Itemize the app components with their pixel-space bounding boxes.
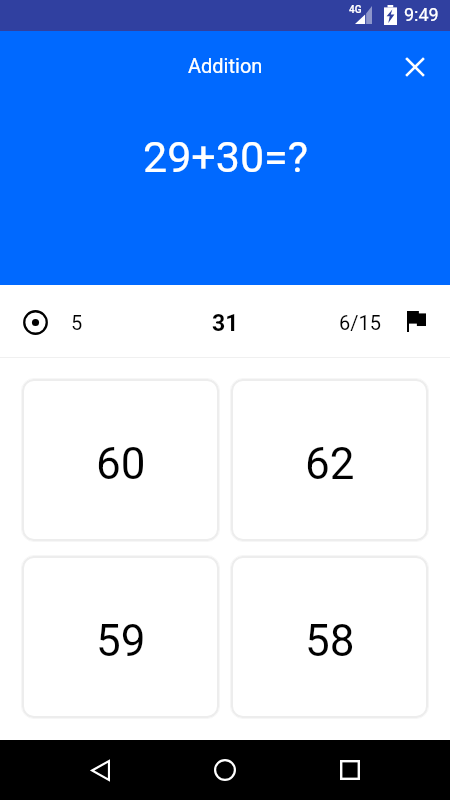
staticText: 9:49: [404, 4, 439, 25]
button[interactable]: Home: [201, 746, 249, 794]
button[interactable]: 62: [230, 378, 429, 542]
staticText: Addition: [188, 54, 263, 77]
staticText: 60: [96, 438, 146, 490]
button[interactable]: 58: [230, 555, 429, 719]
button[interactable]: Back: [76, 746, 124, 794]
button[interactable]: Close: [394, 46, 435, 87]
staticText: 59: [96, 615, 146, 667]
staticText: 31: [212, 310, 239, 337]
button[interactable]: 60: [21, 378, 220, 542]
button[interactable]: Recents: [326, 746, 374, 794]
staticText: 5: [71, 311, 83, 334]
staticText: 29+30=?: [143, 132, 308, 182]
staticText: 58: [305, 615, 355, 667]
button[interactable]: 59: [21, 555, 220, 719]
staticText: 62: [305, 438, 355, 490]
staticText: 4G: [349, 4, 362, 16]
staticText: 6/15: [339, 311, 381, 334]
